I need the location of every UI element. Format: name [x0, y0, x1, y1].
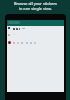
- staticText: Browse all your stickers in one single v…: [14, 1, 57, 11]
- button[interactable]: [8, 21, 20, 24]
